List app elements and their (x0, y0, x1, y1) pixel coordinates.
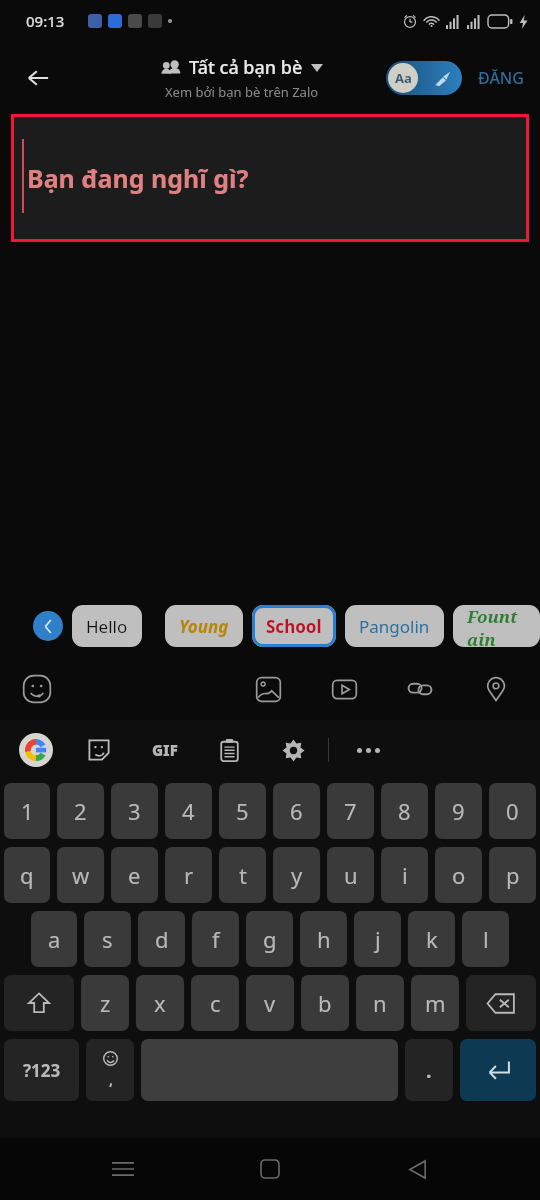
button[interactable]: 5 (219, 783, 266, 839)
staticText: x (154, 988, 166, 1018)
staticText: 3 (128, 796, 141, 826)
button[interactable]: p (489, 847, 536, 903)
button[interactable]: Bạn đang nghĩ gì? (11, 114, 529, 242)
staticText: 9 (452, 796, 465, 826)
button[interactable]: Google search (14, 728, 58, 772)
staticText: a (48, 924, 61, 954)
button[interactable]: y (273, 847, 320, 903)
button[interactable]: x (136, 975, 184, 1031)
button[interactable]: a (31, 911, 77, 967)
staticText: o (452, 860, 466, 890)
staticText: f (212, 924, 220, 954)
button[interactable]: Pangolin (345, 605, 444, 647)
button[interactable]: h (300, 911, 347, 967)
button[interactable]: l (462, 911, 509, 967)
button[interactable]: Enter (460, 1039, 536, 1101)
button[interactable]: c (191, 975, 239, 1031)
button[interactable]: 8 (381, 783, 428, 839)
button[interactable]: g (246, 911, 293, 967)
staticText: w (72, 860, 90, 890)
staticText: ?123 (23, 1059, 61, 1082)
button[interactable]: 0 (489, 783, 536, 839)
button[interactable]: k (408, 911, 455, 967)
button[interactable]: v (246, 975, 294, 1031)
button[interactable]: 9 (435, 783, 482, 839)
button[interactable]: Add link (400, 669, 440, 709)
button[interactable]: o (435, 847, 482, 903)
staticText: j (375, 924, 381, 954)
staticText: k (426, 924, 438, 954)
button[interactable]: Text style and background (386, 61, 462, 95)
staticText: u (344, 860, 358, 890)
button[interactable]: Young (165, 605, 243, 647)
staticText: 2 (74, 796, 87, 826)
staticText: ĐĂNG (478, 67, 524, 89)
button[interactable]: Previous fonts (33, 611, 63, 641)
staticText: Young (179, 615, 229, 638)
button[interactable]: ?123 (4, 1039, 79, 1101)
button[interactable]: Add photo (248, 669, 288, 709)
staticText: Fountain (467, 605, 526, 647)
button[interactable]: ĐĂNG (474, 61, 528, 95)
staticText: v (264, 988, 276, 1018)
staticText: z (100, 988, 111, 1018)
staticText: 8 (398, 796, 411, 826)
button[interactable]: r (165, 847, 212, 903)
button[interactable]: q (4, 847, 50, 903)
button[interactable]: 4 (165, 783, 212, 839)
button[interactable]: m (411, 975, 459, 1031)
button[interactable]: z (81, 975, 129, 1031)
button[interactable]: u (327, 847, 374, 903)
button[interactable]: 6 (273, 783, 320, 839)
button[interactable]: b (301, 975, 349, 1031)
staticText: e (128, 860, 141, 890)
button[interactable]: Tất cả bạn bè (161, 55, 323, 101)
staticText: 09:13 (26, 11, 65, 31)
staticText: , (109, 1070, 113, 1089)
button[interactable]: Shift (4, 975, 74, 1031)
staticText: t (239, 860, 247, 890)
staticText: 0 (506, 796, 519, 826)
button[interactable]: s (84, 911, 131, 967)
button[interactable]: Back (393, 1145, 441, 1193)
staticText: l (483, 924, 489, 954)
button[interactable]: Add video (324, 669, 364, 709)
button[interactable]: Stickers (78, 729, 120, 771)
button[interactable]: Backspace (466, 975, 536, 1031)
button[interactable]: Emoji and comma (86, 1039, 134, 1101)
button[interactable]: d (138, 911, 185, 967)
button[interactable]: i (381, 847, 428, 903)
button[interactable]: Emoji (14, 666, 60, 712)
staticText: Xem bởi bạn bè trên Zalo (165, 83, 319, 101)
staticText: 6 (290, 796, 303, 826)
button[interactable]: School (252, 605, 336, 647)
button[interactable]: 1 (4, 783, 50, 839)
button[interactable]: n (356, 975, 404, 1031)
button[interactable]: 7 (327, 783, 374, 839)
staticText: p (506, 860, 520, 890)
staticText: g (263, 924, 277, 954)
button[interactable]: GIF (142, 727, 188, 773)
button[interactable]: Settings (272, 729, 314, 771)
button[interactable]: j (354, 911, 401, 967)
staticText: m (425, 988, 446, 1018)
button[interactable]: . (405, 1039, 453, 1101)
button[interactable]: t (219, 847, 266, 903)
button[interactable]: Back (14, 54, 62, 102)
button[interactable]: 2 (57, 783, 104, 839)
staticText: . (426, 1057, 432, 1084)
button[interactable]: Add location (476, 669, 516, 709)
button[interactable]: Hello (72, 605, 142, 647)
button[interactable]: Home (246, 1145, 294, 1193)
button[interactable]: e (111, 847, 158, 903)
button[interactable]: Clipboard (208, 729, 250, 771)
button[interactable]: More options (347, 729, 389, 771)
staticText: y (291, 860, 303, 890)
button[interactable]: f (192, 911, 239, 967)
button[interactable]: Recent apps (99, 1145, 147, 1193)
staticText: 7 (344, 796, 357, 826)
button[interactable]: Fountain (453, 605, 540, 647)
button[interactable]: w (57, 847, 104, 903)
button[interactable]: 3 (111, 783, 158, 839)
